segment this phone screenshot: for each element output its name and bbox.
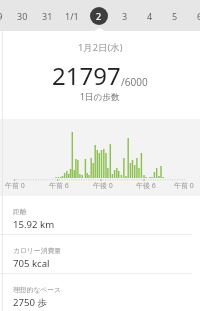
button[interactable]: 6 — [189, 0, 200, 31]
button[interactable]: 3 — [114, 0, 136, 31]
staticText: 21797 — [52, 59, 121, 92]
button[interactable]: 5 — [164, 0, 186, 31]
staticText: 1日の歩数 — [80, 91, 120, 103]
button[interactable]: カロリー消費量 — [0, 235, 200, 274]
staticText: 2750 歩 — [13, 296, 48, 309]
staticText: 午後 0 — [93, 181, 113, 191]
button[interactable]: 理想的なペース — [0, 274, 200, 311]
button[interactable]: 29 — [0, 0, 8, 31]
button[interactable]: 2 — [86, 0, 112, 31]
staticText: /6000 — [121, 75, 148, 89]
staticText: 距離 — [13, 207, 27, 216]
button[interactable]: 30 — [11, 0, 33, 31]
staticText: 3 — [122, 10, 128, 22]
staticText: 理想的なペース — [13, 285, 62, 294]
button[interactable]: 距離 — [0, 196, 200, 235]
staticText: 31 — [42, 10, 53, 22]
staticText: 1/1 — [65, 10, 79, 22]
button[interactable]: 31 — [36, 0, 58, 31]
staticText: 15.92 km — [13, 218, 55, 231]
button[interactable]: 1/1 — [61, 0, 83, 31]
staticText: 5 — [172, 10, 178, 22]
staticText: カロリー消費量 — [13, 246, 62, 255]
staticText: 午後 6 — [136, 181, 156, 191]
staticText: 午前 6 — [49, 181, 69, 191]
staticText: 705 kcal — [13, 257, 50, 270]
staticText: 6 — [197, 10, 200, 22]
staticText: 30 — [17, 10, 28, 22]
staticText: 午前 0 — [5, 181, 25, 191]
staticText: 午前 0 — [174, 181, 194, 191]
button[interactable]: 4 — [139, 0, 161, 31]
staticText: 4 — [147, 10, 153, 22]
staticText: 1月2日(水) — [78, 41, 123, 54]
staticText: 29 — [0, 10, 3, 22]
staticText: 2 — [96, 10, 102, 22]
